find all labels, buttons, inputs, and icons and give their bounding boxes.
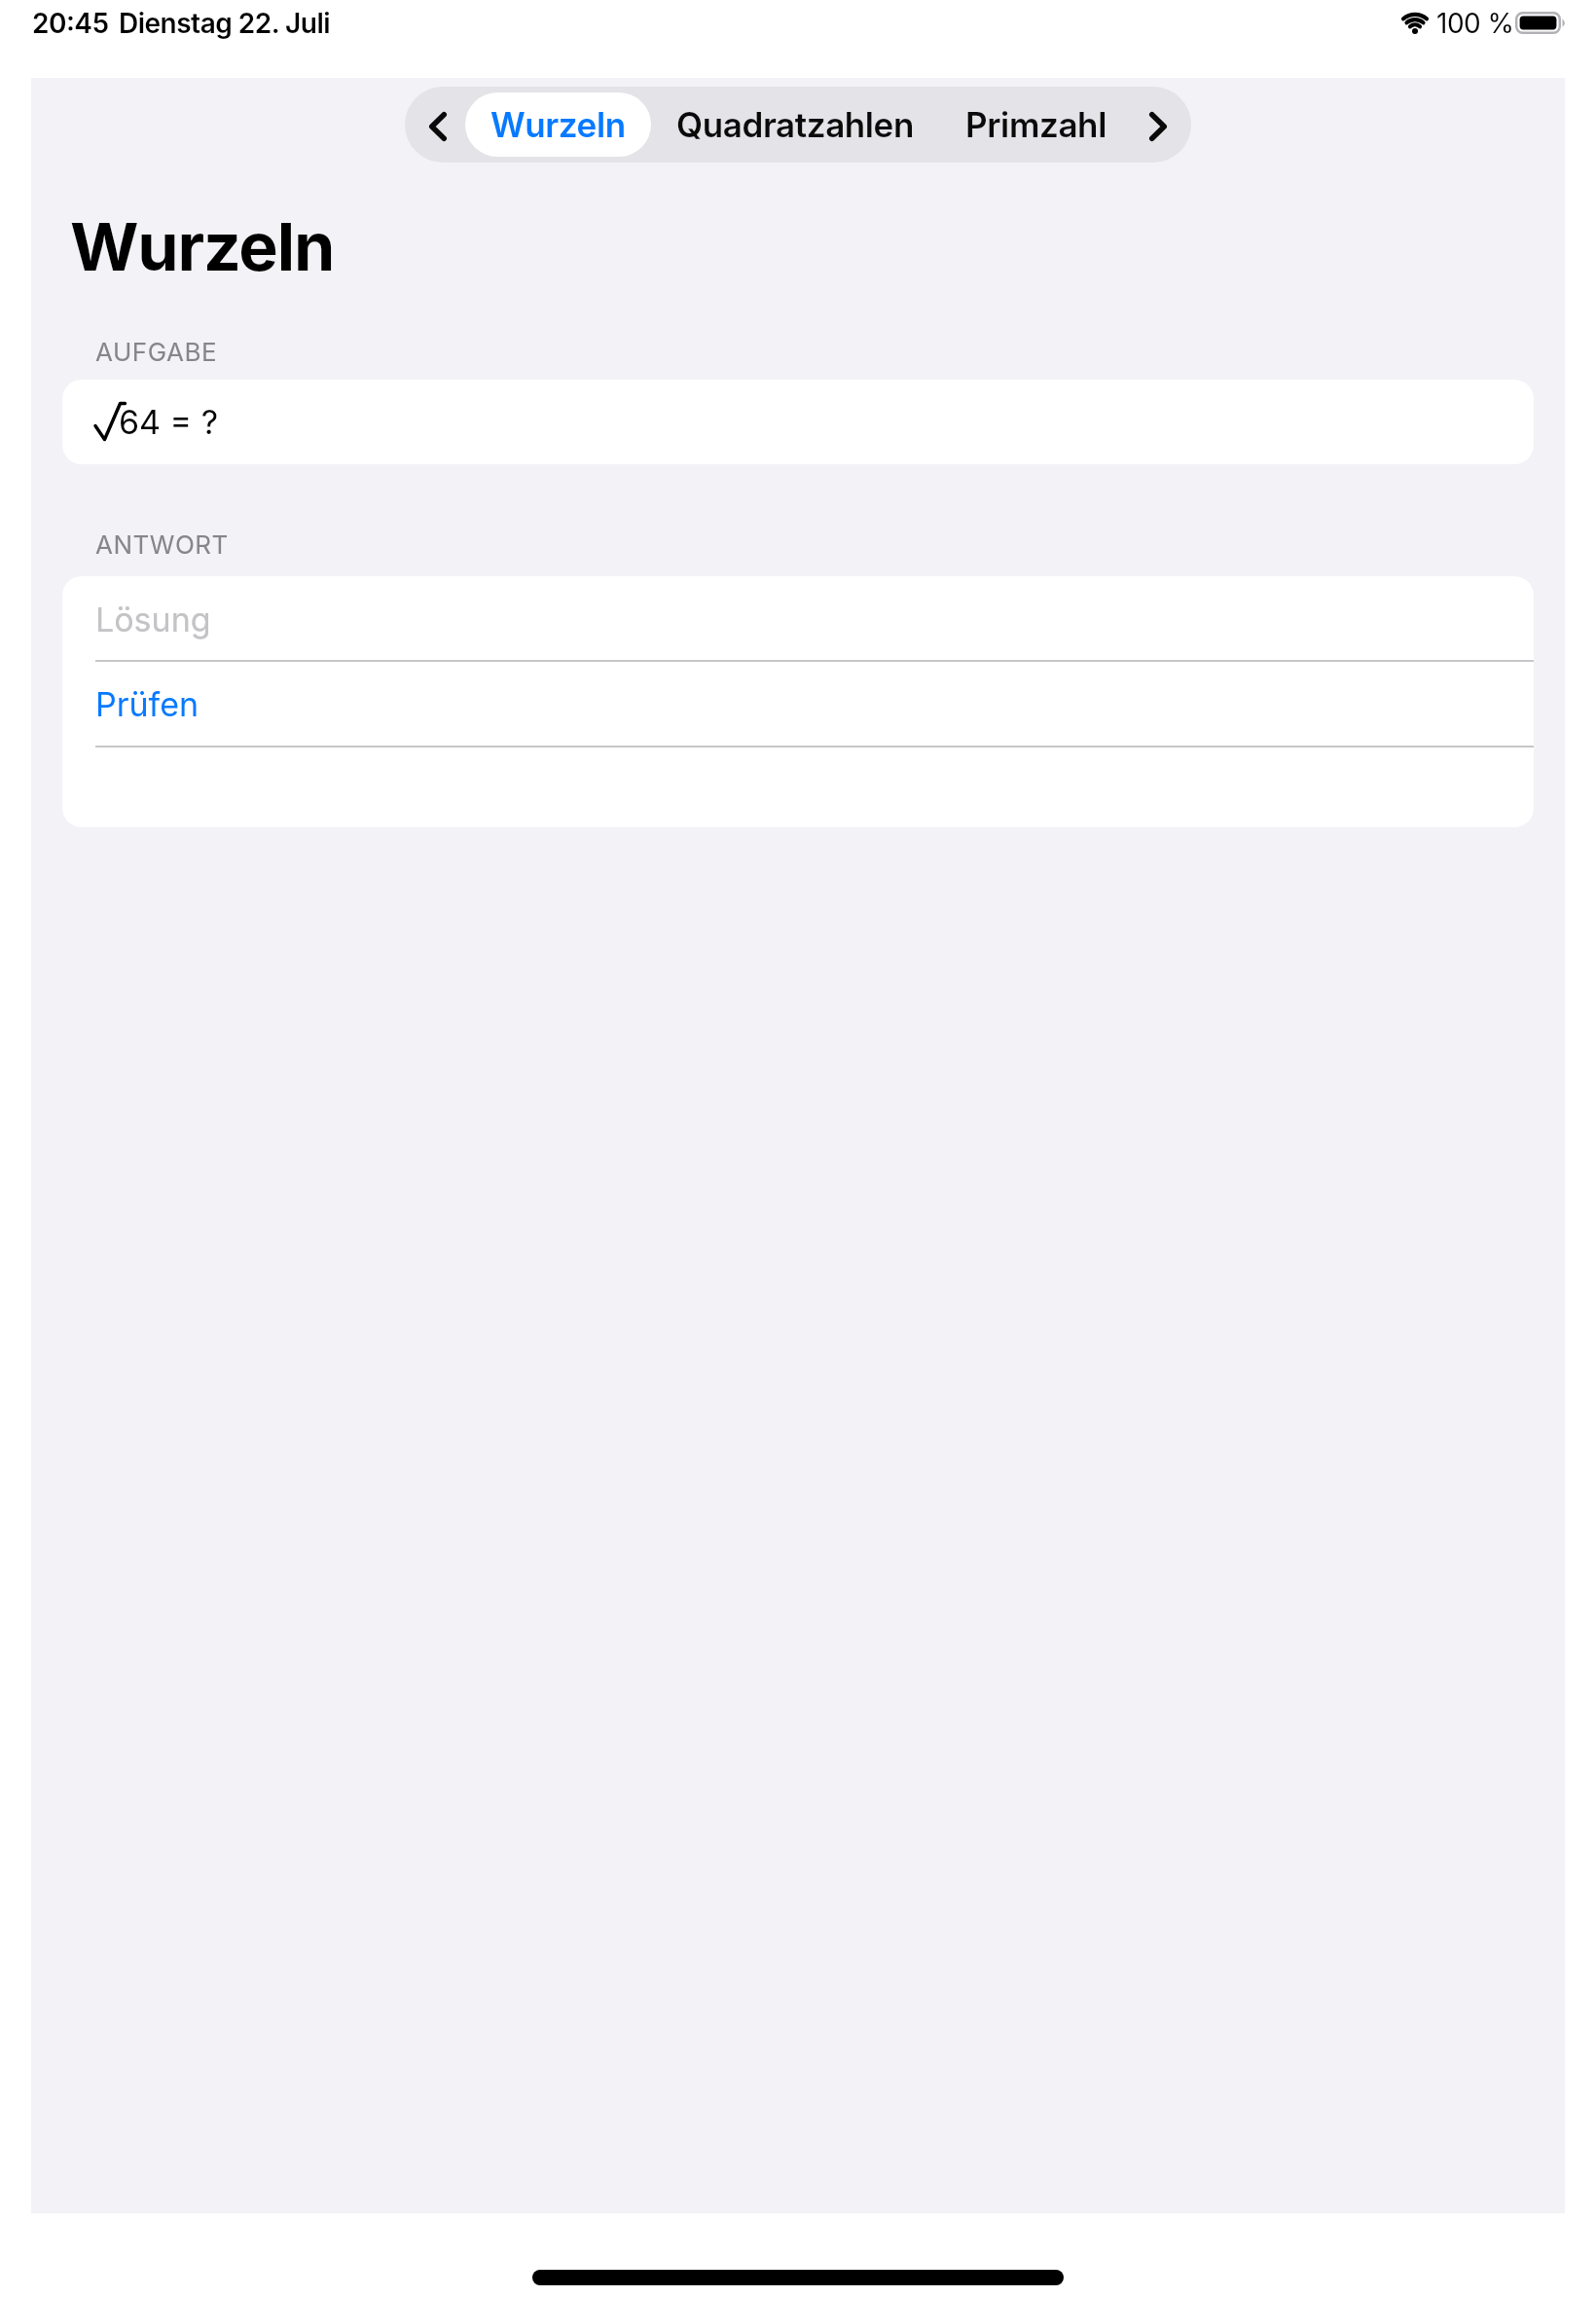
staticText: Dienstag 22. Juli (119, 7, 331, 40)
staticText: 64 = ? (119, 402, 219, 442)
staticText: 20:45 (32, 7, 109, 40)
staticText: Primzahl (965, 104, 1106, 145)
staticText: Lösung (95, 600, 211, 639)
staticText: 100 % (1436, 7, 1514, 40)
button[interactable] (1144, 108, 1172, 145)
button[interactable] (424, 108, 452, 145)
staticText: AUFGABE (95, 337, 218, 367)
staticText: Quadratzahlen (676, 104, 914, 145)
button[interactable]: Quadratzahlen (0, 0, 272, 64)
staticText: Wurzeln (70, 206, 335, 286)
staticText: ANTWORT (95, 529, 229, 560)
button[interactable] (62, 661, 1534, 747)
button[interactable]: Primzahl (0, 0, 195, 64)
button[interactable]: Wurzeln (465, 92, 651, 157)
button[interactable] (62, 576, 1534, 661)
staticText: Prüfen (95, 684, 199, 724)
staticText: Wurzeln (490, 104, 626, 145)
